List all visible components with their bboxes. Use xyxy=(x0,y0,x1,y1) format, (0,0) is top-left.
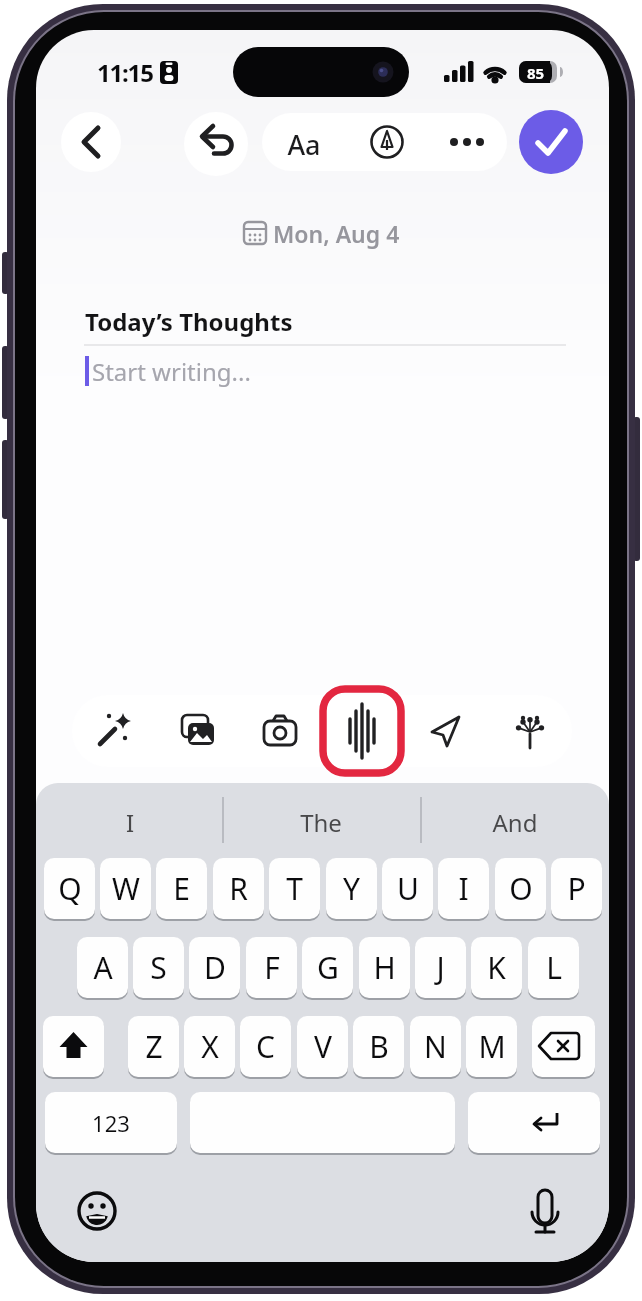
staticText: 85 xyxy=(519,63,552,83)
button[interactable] xyxy=(43,1016,104,1077)
button[interactable]: X xyxy=(184,1016,235,1077)
staticText: Mon, Aug 4 xyxy=(273,218,443,249)
button[interactable]: F xyxy=(246,937,297,998)
button[interactable] xyxy=(262,113,343,171)
button[interactable] xyxy=(519,110,583,174)
staticText: H xyxy=(373,947,396,988)
button[interactable] xyxy=(61,112,121,172)
button[interactable] xyxy=(468,1092,600,1153)
staticText: And xyxy=(445,806,585,834)
button[interactable] xyxy=(523,1189,567,1233)
button[interactable]: M xyxy=(466,1016,517,1077)
button[interactable]: G xyxy=(302,937,353,998)
staticText: O xyxy=(509,868,533,909)
staticText: X xyxy=(201,1026,219,1067)
staticText: T xyxy=(286,868,303,909)
staticText: N xyxy=(424,1026,447,1067)
staticText: Q xyxy=(58,868,82,909)
button[interactable] xyxy=(323,695,406,767)
button[interactable]: C xyxy=(240,1016,291,1077)
button[interactable] xyxy=(425,113,507,171)
button[interactable] xyxy=(240,695,323,767)
staticText: I xyxy=(458,868,469,909)
staticText: F xyxy=(264,947,280,988)
staticText: A xyxy=(93,947,113,988)
button[interactable] xyxy=(72,695,156,767)
staticText: 123 xyxy=(92,1108,130,1138)
staticText: S xyxy=(150,947,167,988)
button[interactable] xyxy=(190,1092,455,1153)
button[interactable]: T xyxy=(269,858,320,919)
staticText: D xyxy=(204,947,226,988)
staticText: K xyxy=(487,947,506,988)
button[interactable]: 123 xyxy=(45,1092,177,1153)
button[interactable]: J xyxy=(415,937,466,998)
staticText: Start writing... xyxy=(92,355,342,388)
button[interactable] xyxy=(184,112,248,176)
button[interactable]: L xyxy=(528,937,579,998)
staticText: J xyxy=(436,947,445,988)
staticText: L xyxy=(546,947,562,988)
button[interactable]: D xyxy=(189,937,240,998)
button[interactable] xyxy=(489,695,572,767)
button[interactable]: R xyxy=(213,858,264,919)
staticText: The xyxy=(251,806,391,834)
staticText: Y xyxy=(343,868,360,909)
staticText: R xyxy=(229,868,248,909)
button[interactable]: A xyxy=(77,937,128,998)
button[interactable] xyxy=(343,113,425,171)
staticText: V xyxy=(314,1026,332,1067)
staticText: Today’s Thoughts xyxy=(85,305,385,338)
staticText: C xyxy=(256,1026,275,1067)
button[interactable]: H xyxy=(359,937,410,998)
staticText: P xyxy=(567,868,586,909)
button[interactable] xyxy=(40,790,220,850)
button[interactable]: K xyxy=(471,937,522,998)
button[interactable] xyxy=(226,790,416,850)
button[interactable]: P xyxy=(551,858,602,919)
button[interactable]: E xyxy=(156,858,207,919)
staticText: 11:15 xyxy=(97,56,159,88)
button[interactable]: W xyxy=(100,858,151,919)
button[interactable]: B xyxy=(353,1016,404,1077)
button[interactable]: V xyxy=(297,1016,348,1077)
staticText: Z xyxy=(145,1026,163,1067)
button[interactable] xyxy=(156,695,240,767)
staticText: U xyxy=(397,868,419,909)
button[interactable]: I xyxy=(438,858,489,919)
button[interactable] xyxy=(75,1189,119,1233)
staticText: G xyxy=(317,947,339,988)
button[interactable]: Y xyxy=(326,858,377,919)
button[interactable] xyxy=(406,695,489,767)
button[interactable]: U xyxy=(382,858,433,919)
button[interactable]: S xyxy=(133,937,184,998)
button[interactable]: N xyxy=(410,1016,461,1077)
staticText: M xyxy=(478,1026,506,1067)
button[interactable]: Z xyxy=(128,1016,179,1077)
button[interactable]: Q xyxy=(44,858,95,919)
button[interactable]: O xyxy=(495,858,546,919)
staticText: B xyxy=(369,1026,389,1067)
staticText: E xyxy=(173,868,190,909)
staticText: Aa xyxy=(283,126,325,158)
button[interactable] xyxy=(424,790,604,850)
staticText: W xyxy=(112,868,140,909)
staticText: I xyxy=(60,806,200,834)
button[interactable] xyxy=(532,1016,595,1077)
